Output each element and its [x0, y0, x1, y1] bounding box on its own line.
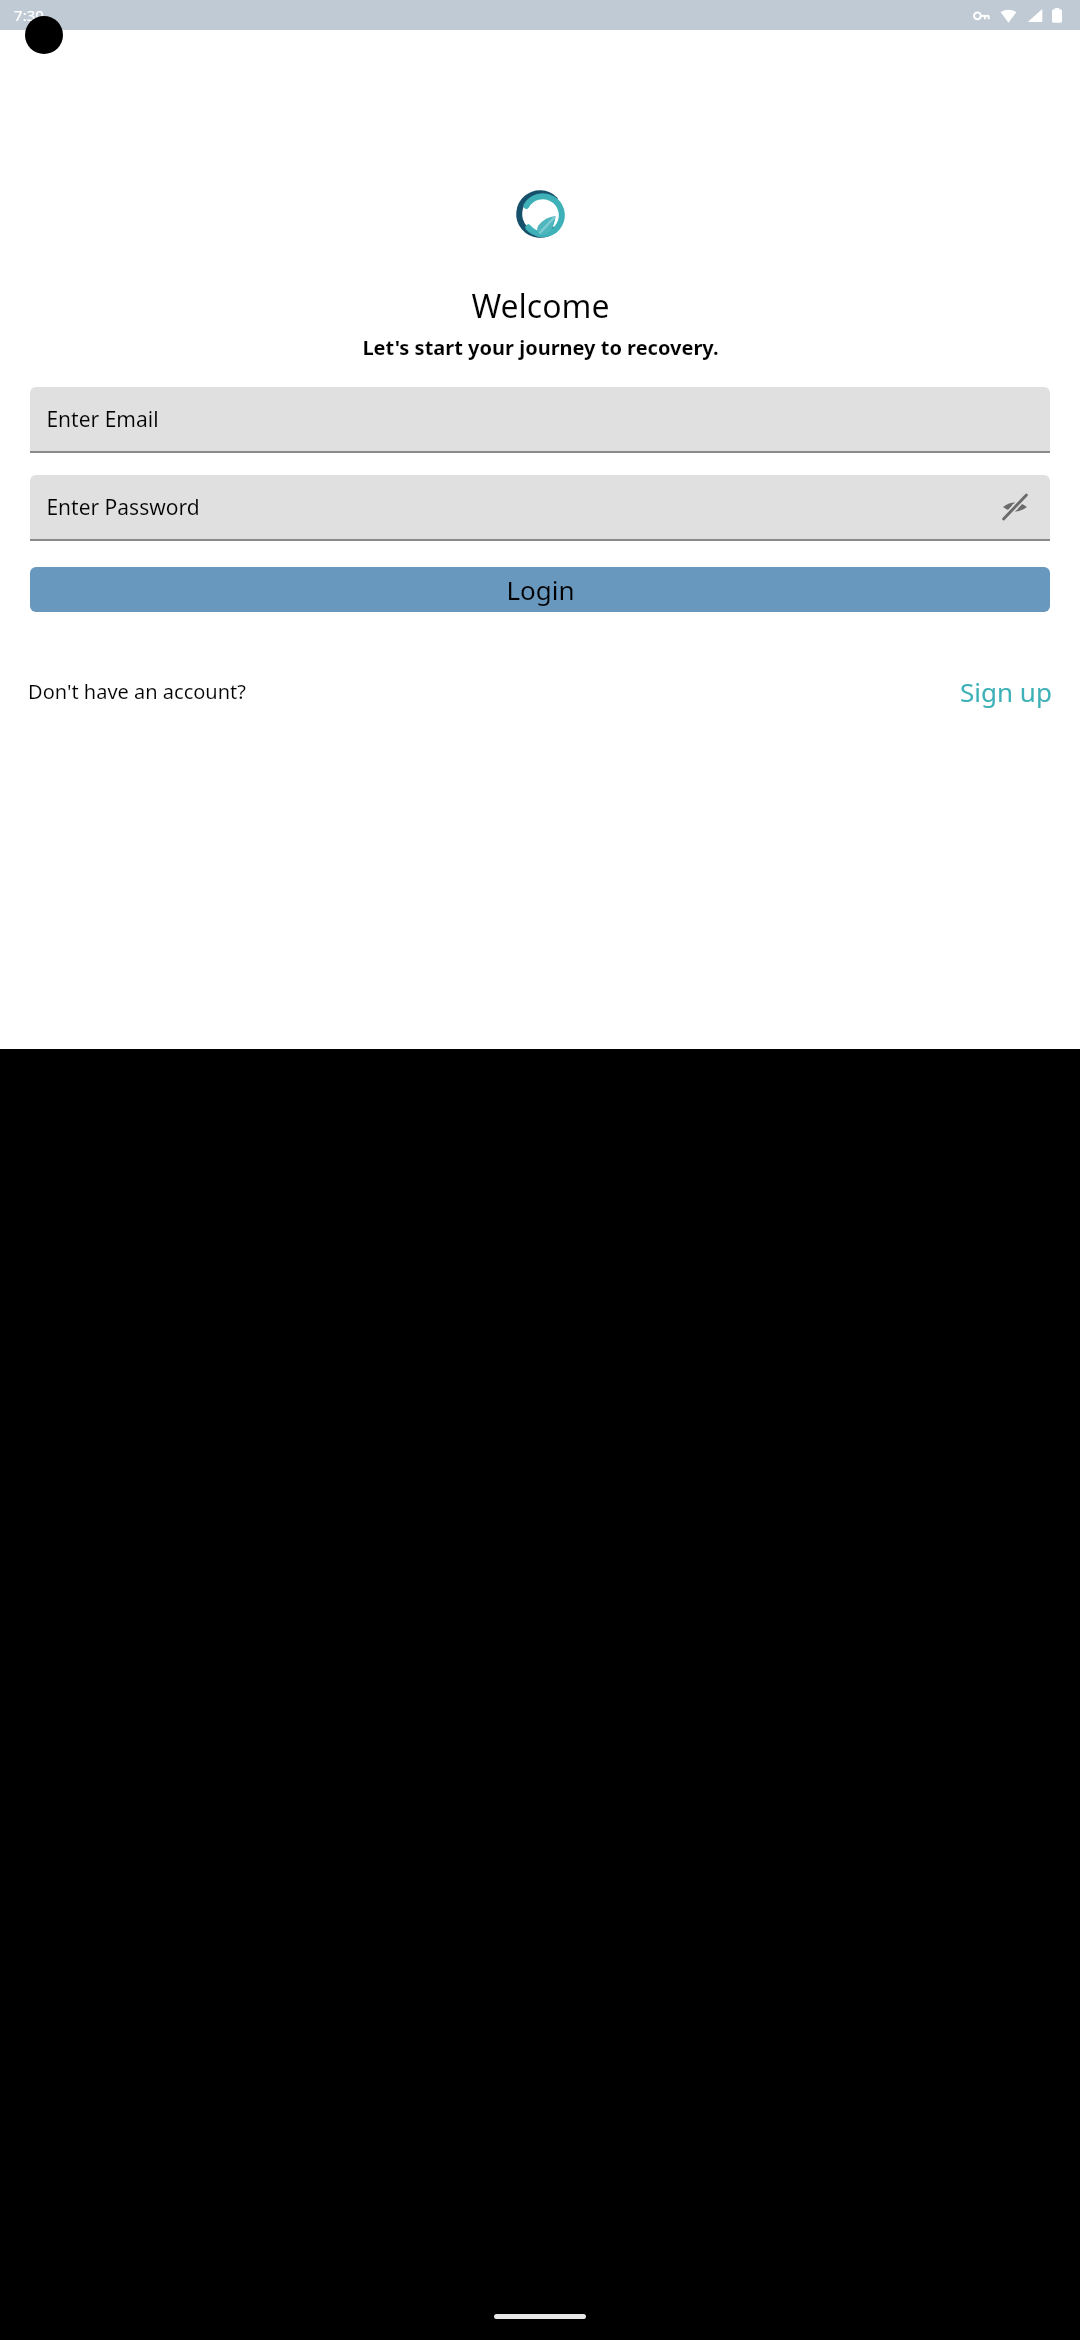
button[interactable]: Enter Email: [30, 387, 1050, 453]
staticText: Let's start your journey to recovery.: [362, 334, 719, 361]
staticText: Sign up: [960, 674, 1052, 709]
button[interactable]: Toggle password visibility: [998, 490, 1032, 524]
button[interactable]: Sign up: [960, 674, 1052, 709]
staticText: Don't have an account?: [28, 678, 246, 705]
staticText: Welcome: [471, 284, 610, 328]
button[interactable]: Enter Password: [30, 475, 1050, 541]
staticText: 7:30: [14, 5, 44, 25]
staticText: Login: [506, 572, 575, 607]
staticText: Enter Email: [46, 405, 159, 434]
staticText: Enter Password: [46, 493, 200, 522]
button[interactable]: Login: [30, 567, 1050, 612]
